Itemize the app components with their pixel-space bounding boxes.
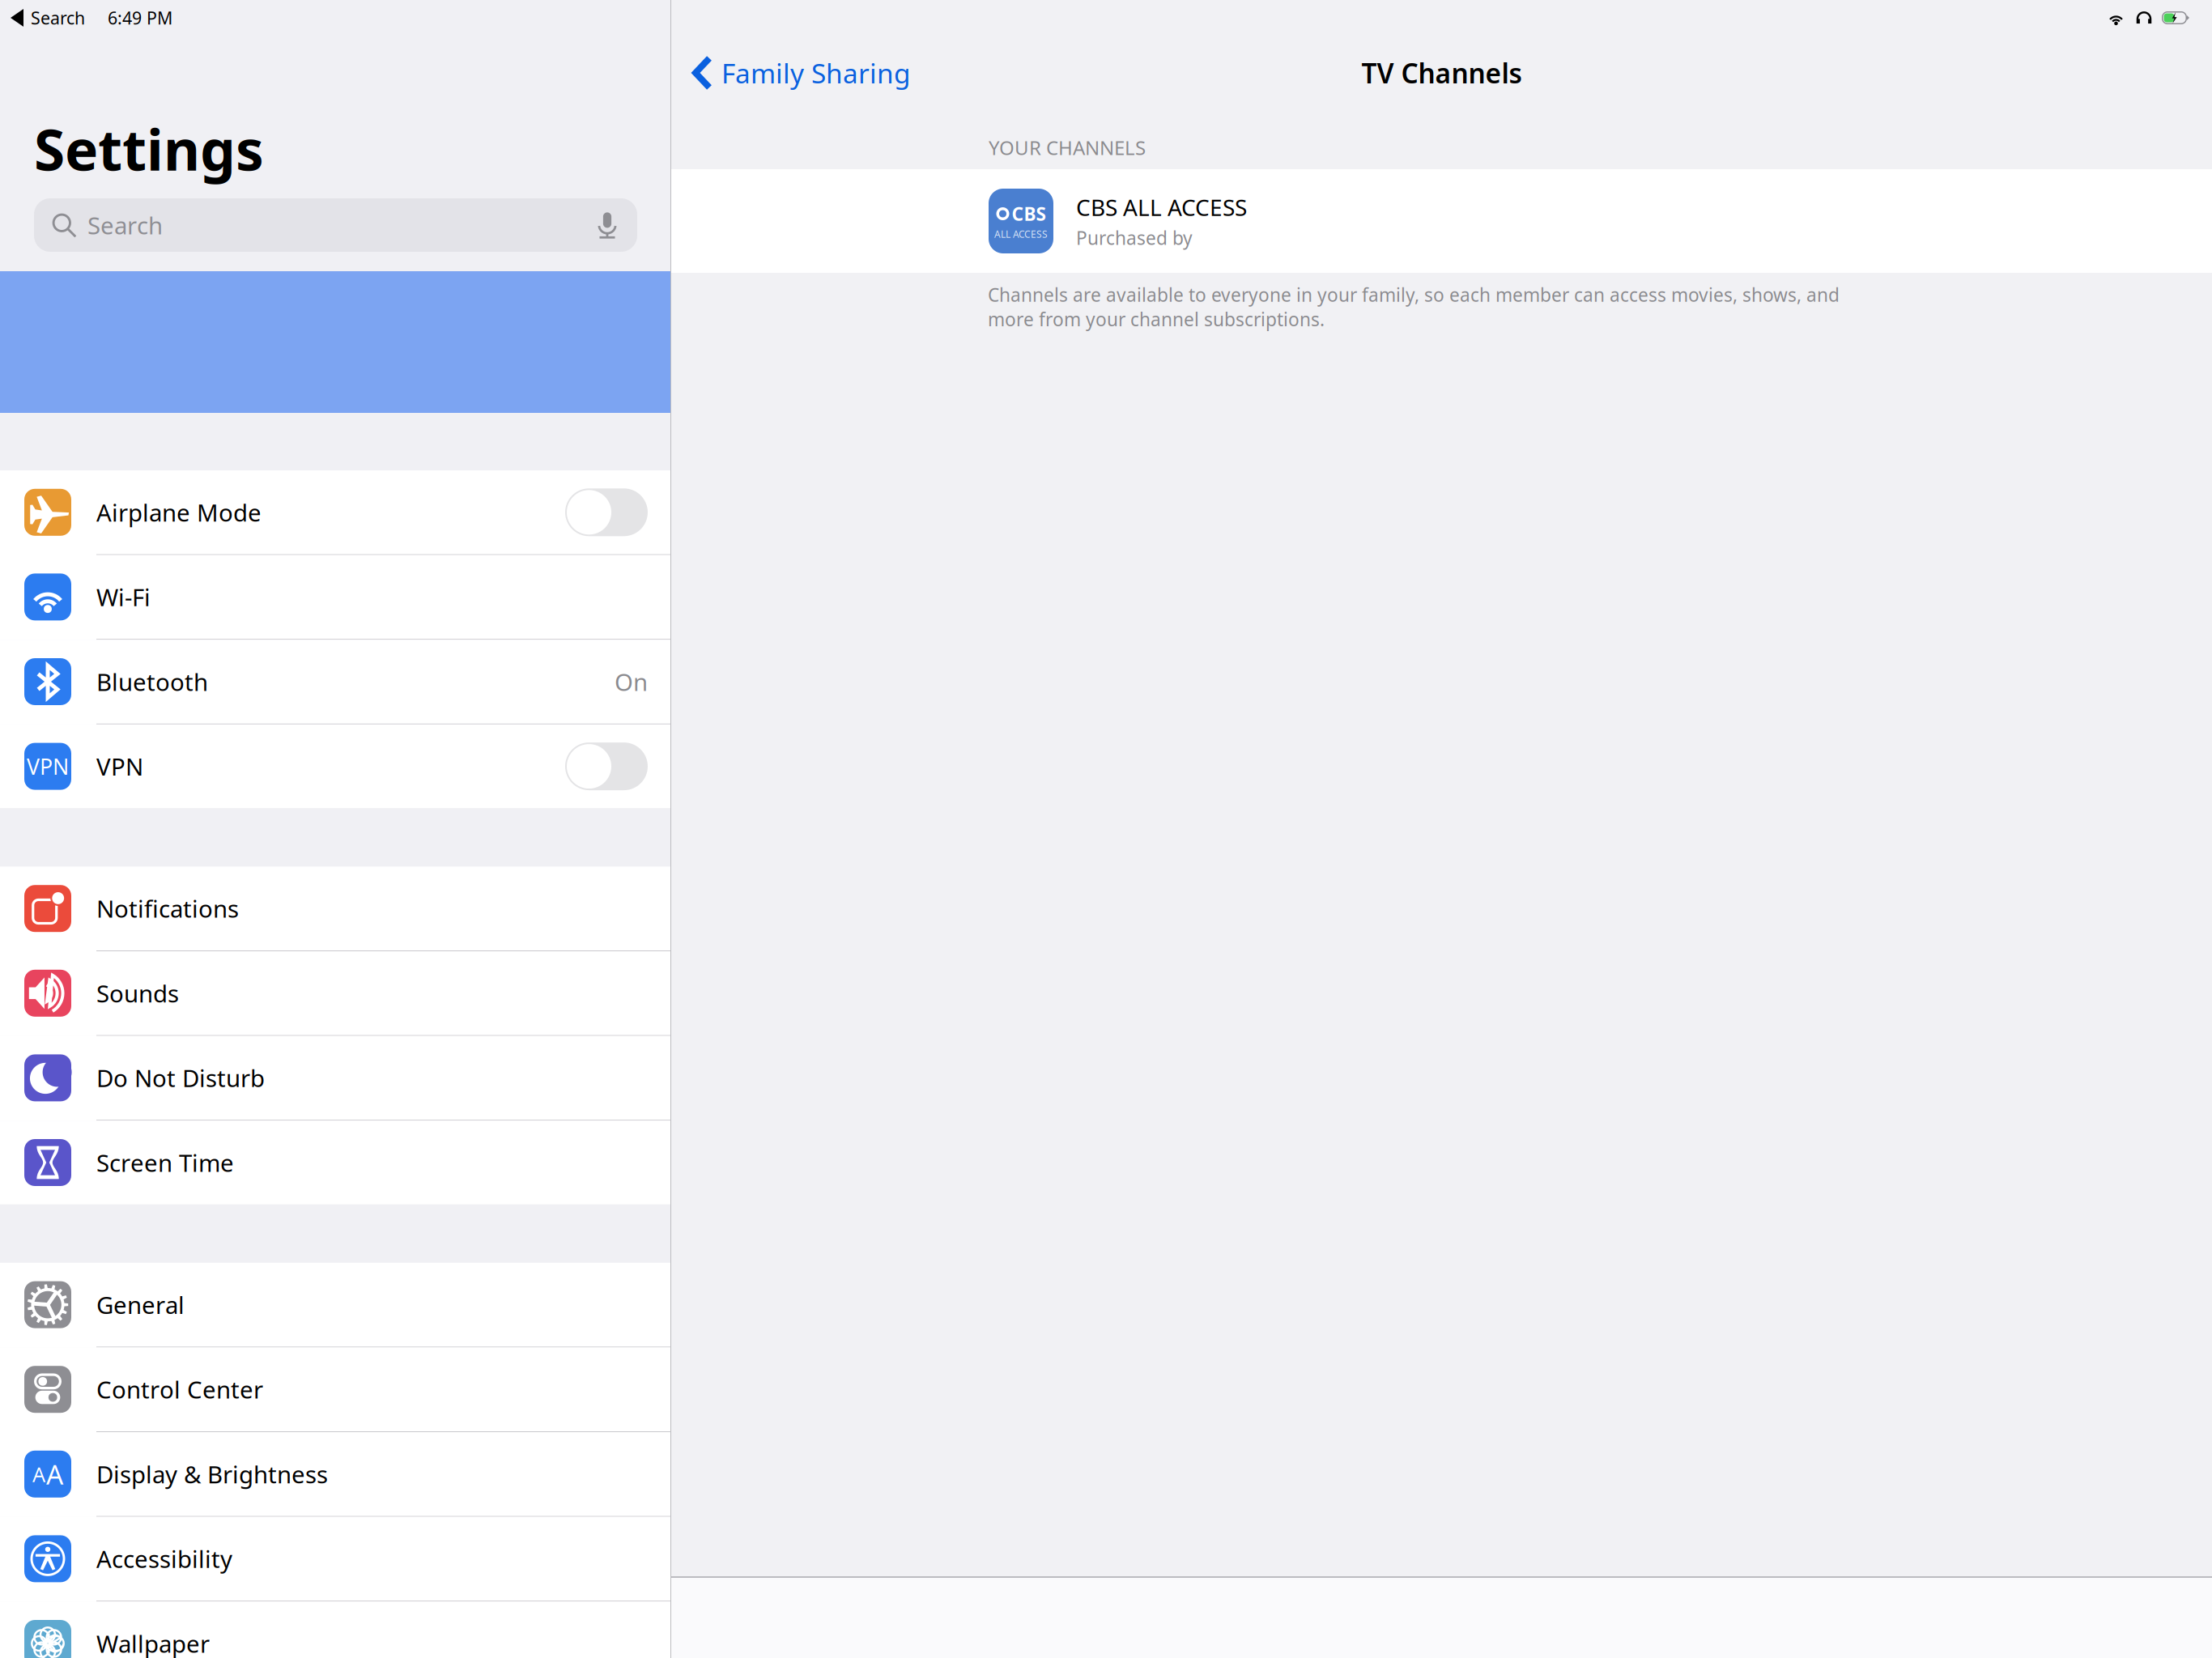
staticText: Display & Brightness bbox=[96, 1458, 328, 1490]
staticText: A bbox=[32, 1460, 45, 1488]
staticText: Control Center bbox=[96, 1374, 263, 1405]
staticText: Bluetooth bbox=[96, 666, 208, 697]
button[interactable]: Accessibility bbox=[0, 1517, 670, 1601]
staticText: YOUR CHANNELS bbox=[989, 134, 1146, 160]
button[interactable]: General bbox=[0, 1263, 670, 1347]
staticText: CBS bbox=[1012, 202, 1046, 226]
button[interactable]: Do Not Disturb bbox=[0, 1036, 670, 1121]
staticText: Screen Time bbox=[96, 1147, 234, 1178]
button[interactable]: A bbox=[0, 1432, 670, 1517]
button[interactable]: VPN bbox=[0, 724, 670, 808]
staticText: A bbox=[46, 1456, 63, 1492]
button[interactable]: Notifications bbox=[0, 867, 670, 951]
staticText: Wallpaper bbox=[96, 1628, 210, 1658]
button[interactable]: Wallpaper bbox=[0, 1601, 670, 1658]
staticText: Family Sharing bbox=[721, 55, 911, 91]
button[interactable]: Control Center bbox=[0, 1347, 670, 1432]
button[interactable]: Family Sharing bbox=[692, 55, 911, 91]
staticText: On bbox=[615, 666, 648, 697]
staticText: Channels are available to everyone in yo… bbox=[988, 283, 1840, 331]
staticText: VPN bbox=[27, 752, 69, 781]
staticText: VPN bbox=[96, 751, 143, 782]
staticText: Do Not Disturb bbox=[96, 1062, 265, 1094]
staticText: Airplane Mode bbox=[96, 497, 262, 528]
staticText: Settings bbox=[34, 112, 264, 186]
staticText: Accessibility bbox=[96, 1543, 232, 1575]
staticText: Search bbox=[87, 209, 163, 241]
staticText: CBS ALL ACCESS bbox=[1076, 192, 1247, 222]
staticText: Purchased by bbox=[1076, 225, 1193, 250]
staticText: Sounds bbox=[96, 977, 179, 1009]
staticText: TV Channels bbox=[1361, 55, 1522, 91]
button[interactable]: Bluetooth bbox=[0, 640, 670, 724]
staticText: Search bbox=[31, 6, 85, 29]
button[interactable]: Screen Time bbox=[0, 1121, 670, 1204]
staticText: Notifications bbox=[96, 893, 239, 924]
staticText: ALL ACCESS bbox=[994, 228, 1048, 240]
button[interactable]: Airplane Mode bbox=[0, 470, 670, 555]
staticText: General bbox=[96, 1289, 185, 1320]
staticText: 6:49 PM bbox=[108, 6, 172, 29]
button[interactable]: Sounds bbox=[0, 951, 670, 1036]
button[interactable]: Wi-Fi bbox=[0, 555, 670, 640]
button[interactable]: CBS bbox=[671, 169, 2212, 273]
staticText: Wi-Fi bbox=[96, 581, 151, 613]
